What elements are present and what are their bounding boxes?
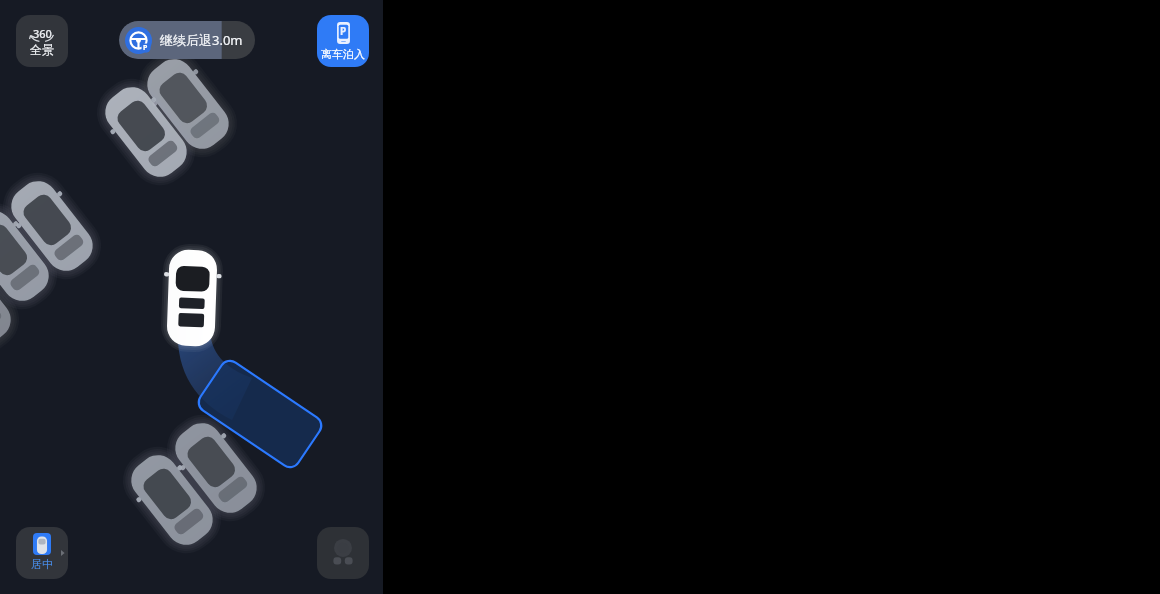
button[interactable]: P: [119, 21, 255, 59]
button[interactable]: 360: [16, 15, 68, 67]
staticText: 居中: [31, 557, 53, 571]
staticText: 离车泊入: [321, 47, 365, 61]
button[interactable]: P: [317, 15, 369, 67]
staticText: 继续后退3.0m: [160, 31, 243, 49]
staticText: P: [143, 43, 148, 53]
staticText: 360: [33, 26, 52, 41]
button[interactable]: Driving mode: [317, 527, 369, 579]
button[interactable]: 居中: [16, 527, 68, 579]
staticText: P: [340, 24, 347, 38]
staticText: 全景: [30, 42, 54, 57]
